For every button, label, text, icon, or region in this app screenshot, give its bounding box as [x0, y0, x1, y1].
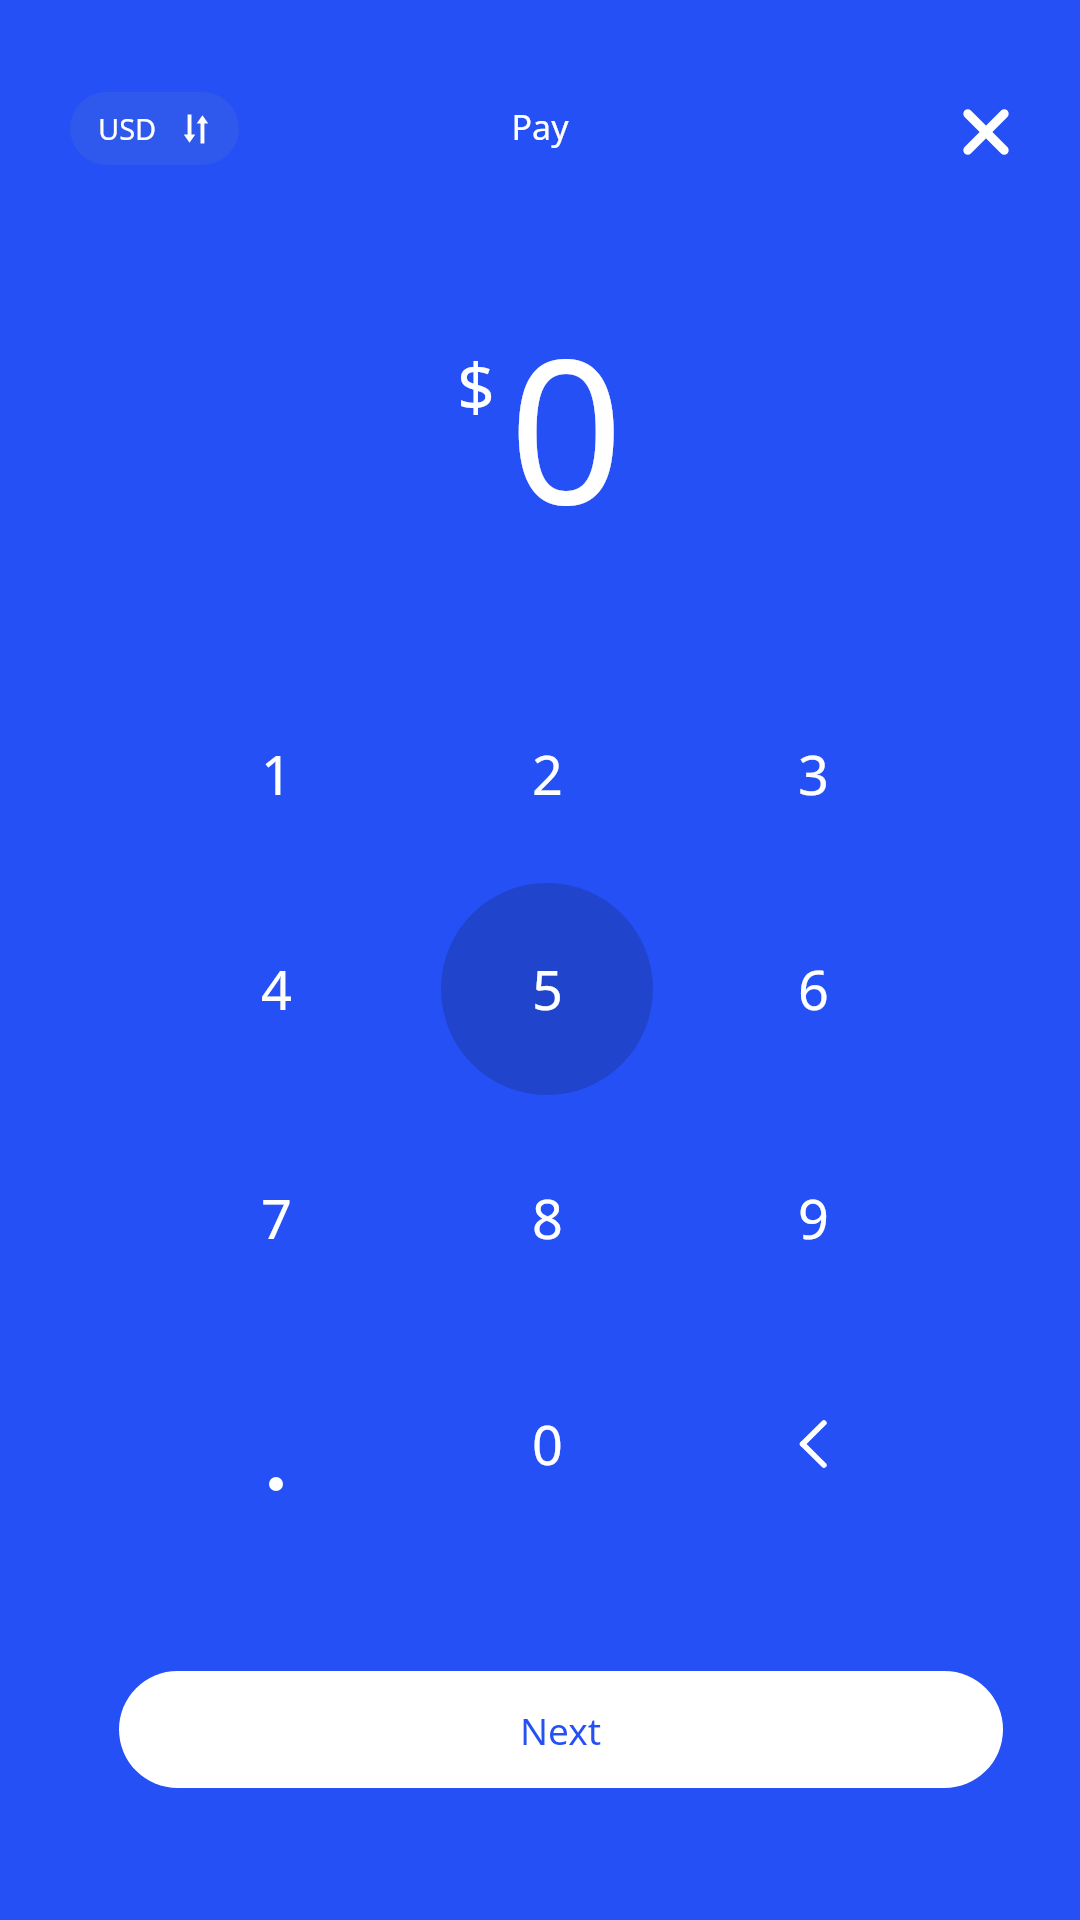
button[interactable]: 6	[707, 883, 919, 1095]
button[interactable]: Next	[119, 1671, 1003, 1788]
staticText: 3	[798, 737, 829, 811]
staticText: Next	[520, 1705, 602, 1755]
staticText: 0	[532, 1407, 563, 1481]
staticText: 9	[798, 1181, 829, 1255]
button[interactable]: 9	[707, 1112, 919, 1324]
button[interactable]: 3	[707, 668, 919, 880]
staticText: 7	[261, 1181, 292, 1255]
button[interactable]: Backspace	[707, 1338, 919, 1550]
staticText: 5	[532, 952, 563, 1026]
button[interactable]: Decimal point	[170, 1338, 382, 1550]
button[interactable]: 0	[441, 1338, 653, 1550]
staticText: 4	[261, 952, 292, 1026]
staticText: USD	[98, 109, 157, 148]
staticText: $	[457, 340, 495, 430]
staticText: 1	[261, 737, 292, 811]
staticText: 8	[532, 1181, 563, 1255]
button[interactable]: Close	[930, 76, 1042, 188]
button[interactable]: 7	[170, 1112, 382, 1324]
button[interactable]: 8	[441, 1112, 653, 1324]
button[interactable]: 4	[170, 883, 382, 1095]
staticText: 2	[532, 737, 563, 811]
button[interactable]: 2	[441, 668, 653, 880]
button[interactable]: 5	[441, 883, 653, 1095]
staticText: Pay	[0, 104, 1080, 150]
staticText: 0	[509, 290, 624, 562]
staticText: 6	[798, 952, 829, 1026]
button[interactable]: USD	[70, 92, 239, 165]
button[interactable]: 1	[170, 668, 382, 880]
